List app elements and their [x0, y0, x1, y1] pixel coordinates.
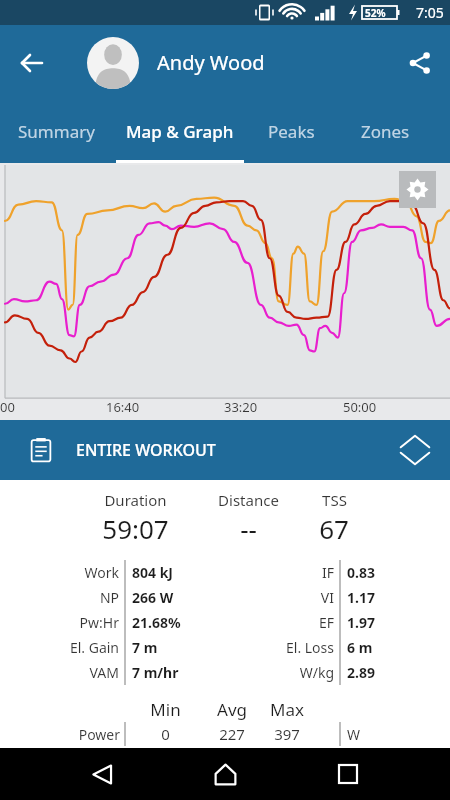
button[interactable]: Summary: [4, 100, 109, 163]
staticText: 227: [219, 724, 245, 744]
staticText: 804 kJ: [132, 563, 173, 582]
staticText: Pw:Hr: [79, 613, 119, 632]
staticText: TSS: [322, 490, 347, 510]
button[interactable]: Expand: [394, 429, 436, 471]
staticText: Min: [150, 698, 181, 721]
staticText: Avg: [217, 698, 247, 721]
staticText: 7 m: [132, 638, 158, 657]
staticText: 59:07: [102, 511, 169, 542]
staticText: 16:40: [106, 398, 140, 416]
button[interactable]: Profile photo: [87, 37, 139, 89]
staticText: EF: [318, 613, 334, 632]
staticText: 1.17: [347, 588, 375, 607]
staticText: VAM: [89, 663, 119, 682]
button[interactable]: Chart settings: [399, 171, 436, 208]
staticText: Zones: [361, 120, 410, 143]
staticText: VI: [320, 588, 334, 607]
staticText: Max: [270, 698, 304, 721]
staticText: Power: [78, 725, 120, 744]
staticText: Duration: [104, 490, 167, 510]
staticText: 33:20: [224, 398, 258, 416]
staticText: 50:00: [343, 398, 377, 416]
staticText: Peaks: [268, 120, 315, 143]
staticText: 0.83: [347, 563, 375, 582]
staticText: 7 m/hr: [132, 663, 179, 682]
staticText: Work: [84, 563, 119, 582]
button[interactable]: Home: [203, 752, 247, 796]
staticText: 2.89: [347, 663, 375, 682]
button[interactable]: Peaks: [252, 100, 330, 163]
staticText: 52%: [365, 6, 386, 20]
button[interactable]: Recent apps: [326, 752, 370, 796]
button[interactable]: Zones: [342, 100, 428, 163]
staticText: 1.97: [347, 613, 375, 632]
staticText: El. Loss: [285, 638, 334, 657]
button[interactable]: Back: [10, 41, 54, 85]
staticText: Map & Graph: [126, 120, 234, 143]
staticText: 67: [319, 511, 349, 542]
staticText: 6 m: [347, 638, 373, 657]
staticText: El. Gain: [69, 638, 119, 657]
button[interactable]: Share: [398, 41, 442, 85]
staticText: Andy Wood: [157, 49, 265, 76]
staticText: ENTIRE WORKOUT: [76, 439, 216, 461]
staticText: 00: [0, 398, 15, 416]
staticText: 397: [274, 724, 300, 744]
button[interactable]: Back: [80, 752, 124, 796]
button[interactable]: Map & Graph: [110, 100, 250, 163]
staticText: 0: [161, 724, 170, 744]
staticText: NP: [99, 588, 119, 607]
button[interactable]: ENTIRE WORKOUT: [0, 420, 450, 480]
staticText: 21.68%: [132, 613, 181, 632]
staticText: 7:05: [416, 3, 444, 22]
staticText: W/kg: [299, 663, 334, 682]
staticText: W: [347, 725, 361, 744]
staticText: --: [240, 511, 257, 542]
staticText: IF: [321, 563, 334, 582]
staticText: 266 W: [132, 588, 174, 607]
staticText: Summary: [18, 120, 95, 143]
staticText: Distance: [218, 490, 279, 510]
